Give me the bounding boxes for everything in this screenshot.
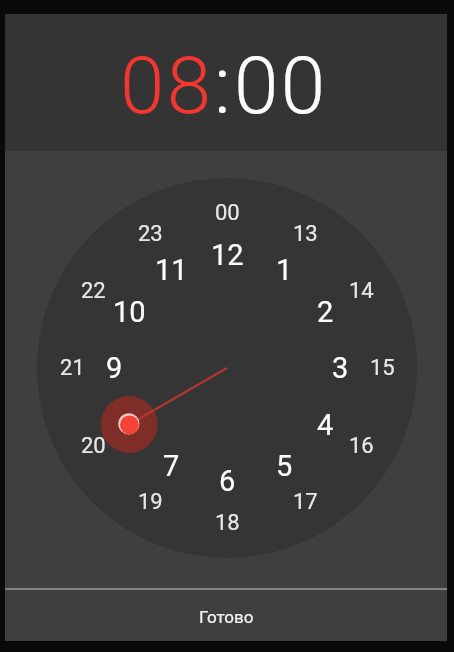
button[interactable]: 08 — [120, 39, 214, 133]
button[interactable]: 12 — [197, 225, 257, 285]
button[interactable]: 2 — [295, 282, 355, 342]
staticText: 18 — [215, 510, 240, 536]
button[interactable]: 17 — [275, 472, 335, 532]
button[interactable]: 10 — [99, 282, 159, 342]
staticText: : — [214, 39, 234, 133]
staticText: 19 — [138, 489, 163, 515]
button[interactable]: 11 — [141, 240, 201, 300]
button[interactable]: 00 — [234, 39, 328, 133]
staticText: Готово — [199, 607, 254, 627]
button[interactable]: 23 — [120, 204, 180, 264]
button[interactable]: 6 — [197, 451, 257, 511]
staticText: 4 — [317, 408, 334, 442]
button[interactable]: 7 — [141, 436, 201, 496]
staticText: 12 — [211, 238, 244, 272]
staticText: 08 — [120, 39, 214, 133]
staticText: 2 — [317, 295, 334, 329]
staticText: 00 — [215, 200, 240, 226]
button[interactable]: 4 — [295, 395, 355, 455]
staticText: 14 — [349, 278, 374, 304]
button[interactable]: 00 — [197, 183, 257, 243]
button[interactable]: 1 — [254, 240, 314, 300]
staticText: 20 — [81, 433, 106, 459]
staticText: 15 — [370, 355, 395, 381]
button[interactable]: 9 — [84, 338, 144, 398]
button[interactable]: 14 — [331, 261, 391, 321]
staticText: 9 — [106, 351, 123, 385]
staticText: 17 — [293, 489, 318, 515]
button[interactable]: 18 — [197, 493, 257, 553]
button[interactable]: 21 — [42, 338, 102, 398]
staticText: 1 — [276, 253, 293, 287]
button[interactable]: 16 — [331, 416, 391, 476]
staticText: 3 — [332, 351, 349, 385]
button[interactable]: 20 — [63, 416, 123, 476]
staticText: 22 — [81, 278, 106, 304]
staticText: 13 — [293, 221, 318, 247]
button[interactable]: 15 — [352, 338, 412, 398]
button[interactable]: 13 — [275, 204, 335, 264]
staticText: 21 — [60, 355, 85, 381]
staticText: 23 — [138, 221, 163, 247]
staticText: 10 — [113, 295, 146, 329]
staticText: 7 — [163, 449, 180, 483]
button[interactable]: 5 — [254, 436, 314, 496]
staticText: 16 — [349, 433, 374, 459]
staticText: 00 — [234, 39, 328, 133]
button[interactable]: 3 — [310, 338, 370, 398]
staticText: 11 — [155, 253, 188, 287]
button[interactable]: 22 — [63, 261, 123, 321]
staticText: 6 — [219, 464, 236, 498]
staticText: 5 — [276, 449, 293, 483]
button[interactable]: 19 — [120, 472, 180, 532]
button[interactable]: Готово — [5, 590, 447, 641]
